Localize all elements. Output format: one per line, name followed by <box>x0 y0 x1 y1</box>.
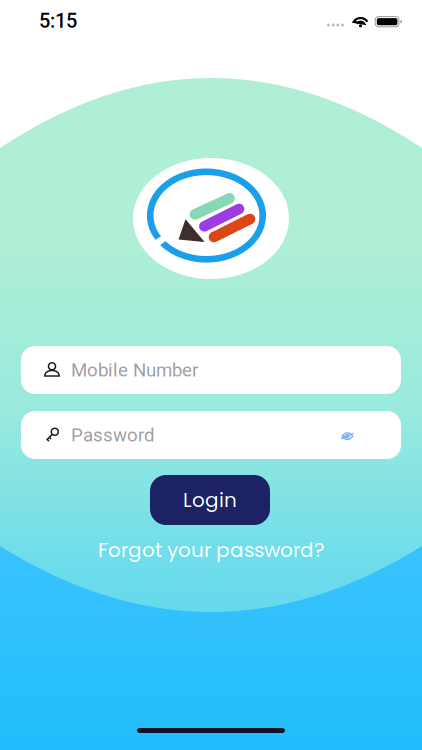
staticText: Password <box>71 424 155 446</box>
button[interactable]: Forgot your password? <box>76 537 346 563</box>
button[interactable]: Login <box>150 475 270 525</box>
button[interactable]: Password <box>21 411 401 459</box>
staticText: 5:15 <box>39 9 77 33</box>
staticText: Mobile Number <box>71 359 198 381</box>
staticText: Login <box>183 486 237 514</box>
button[interactable]: Mobile Number <box>21 346 401 394</box>
staticText: Forgot your password? <box>98 536 324 564</box>
